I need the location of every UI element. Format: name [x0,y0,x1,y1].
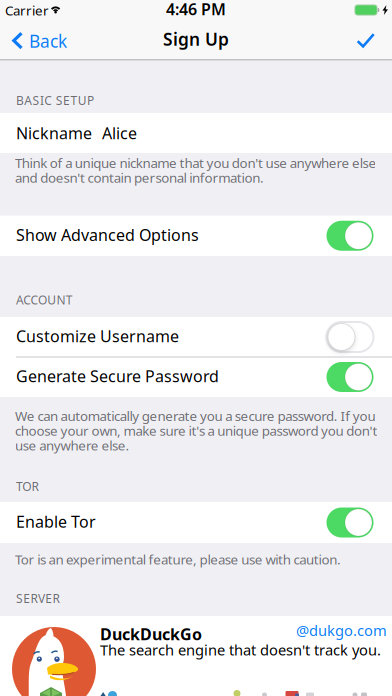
button[interactable]: Back [12,29,67,52]
button[interactable]: Customize Username [326,322,373,352]
staticText: Carrier [5,1,49,19]
staticText: DuckDuckGo [100,623,202,645]
button[interactable]: Nickname [0,113,392,153]
staticText: Enable Tor [16,511,96,532]
staticText: Think of a unique nickname that you don'… [15,154,376,186]
staticText: Alice [102,122,137,144]
staticText: 4:46 PM [166,0,226,20]
button[interactable]: Enable Tor [0,502,392,543]
staticText: Sign Up [163,27,229,50]
button[interactable]: Customize Username [0,317,392,357]
staticText: The search engine that doesn't track you… [100,640,381,659]
button[interactable]: Generate Secure Password [0,357,392,397]
staticText: ACCOUNT [16,292,73,308]
staticText: Customize Username [16,325,179,347]
staticText: We can automatically generate you a secu… [15,407,377,454]
button[interactable]: @dukgo.com [296,620,387,640]
staticText: Show Advanced Options [16,224,199,245]
button[interactable]: Done [355,31,377,49]
staticText: Tor is an experimental feature, please u… [15,550,341,568]
staticText: BASIC SETUP [16,92,94,108]
staticText: TOR [16,478,39,494]
staticText: @dukgo.com [296,620,387,640]
button[interactable]: DuckDuckGo [0,616,392,696]
staticText: Back [29,29,67,52]
button[interactable]: Show Advanced Options [0,215,392,256]
staticText: SERVER [16,590,59,606]
staticText: Generate Secure Password [16,365,219,387]
button[interactable]: Show Advanced Options [326,221,373,251]
button[interactable]: Generate Secure Password [326,362,373,392]
button[interactable]: Enable Tor [326,507,373,537]
staticText: Nickname [16,122,92,144]
